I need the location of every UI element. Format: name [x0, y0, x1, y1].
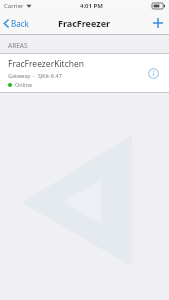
staticText: Online — [15, 81, 33, 88]
staticText: FracFreezerKitchen — [8, 58, 85, 70]
staticText: Gateway - SJKit-6.47 — [8, 72, 62, 79]
staticText: Carrier — [4, 2, 24, 10]
button[interactable]: Add area — [147, 14, 169, 32]
staticText: 4:01 PM — [80, 2, 103, 10]
staticText: Back — [11, 18, 29, 29]
button[interactable]: Back — [0, 15, 35, 32]
button[interactable]: More info — [144, 64, 163, 83]
button[interactable]: FracFreezerKitchen — [0, 54, 169, 92]
staticText: AREAS — [8, 41, 28, 50]
staticText: FracFreezer — [58, 17, 111, 29]
